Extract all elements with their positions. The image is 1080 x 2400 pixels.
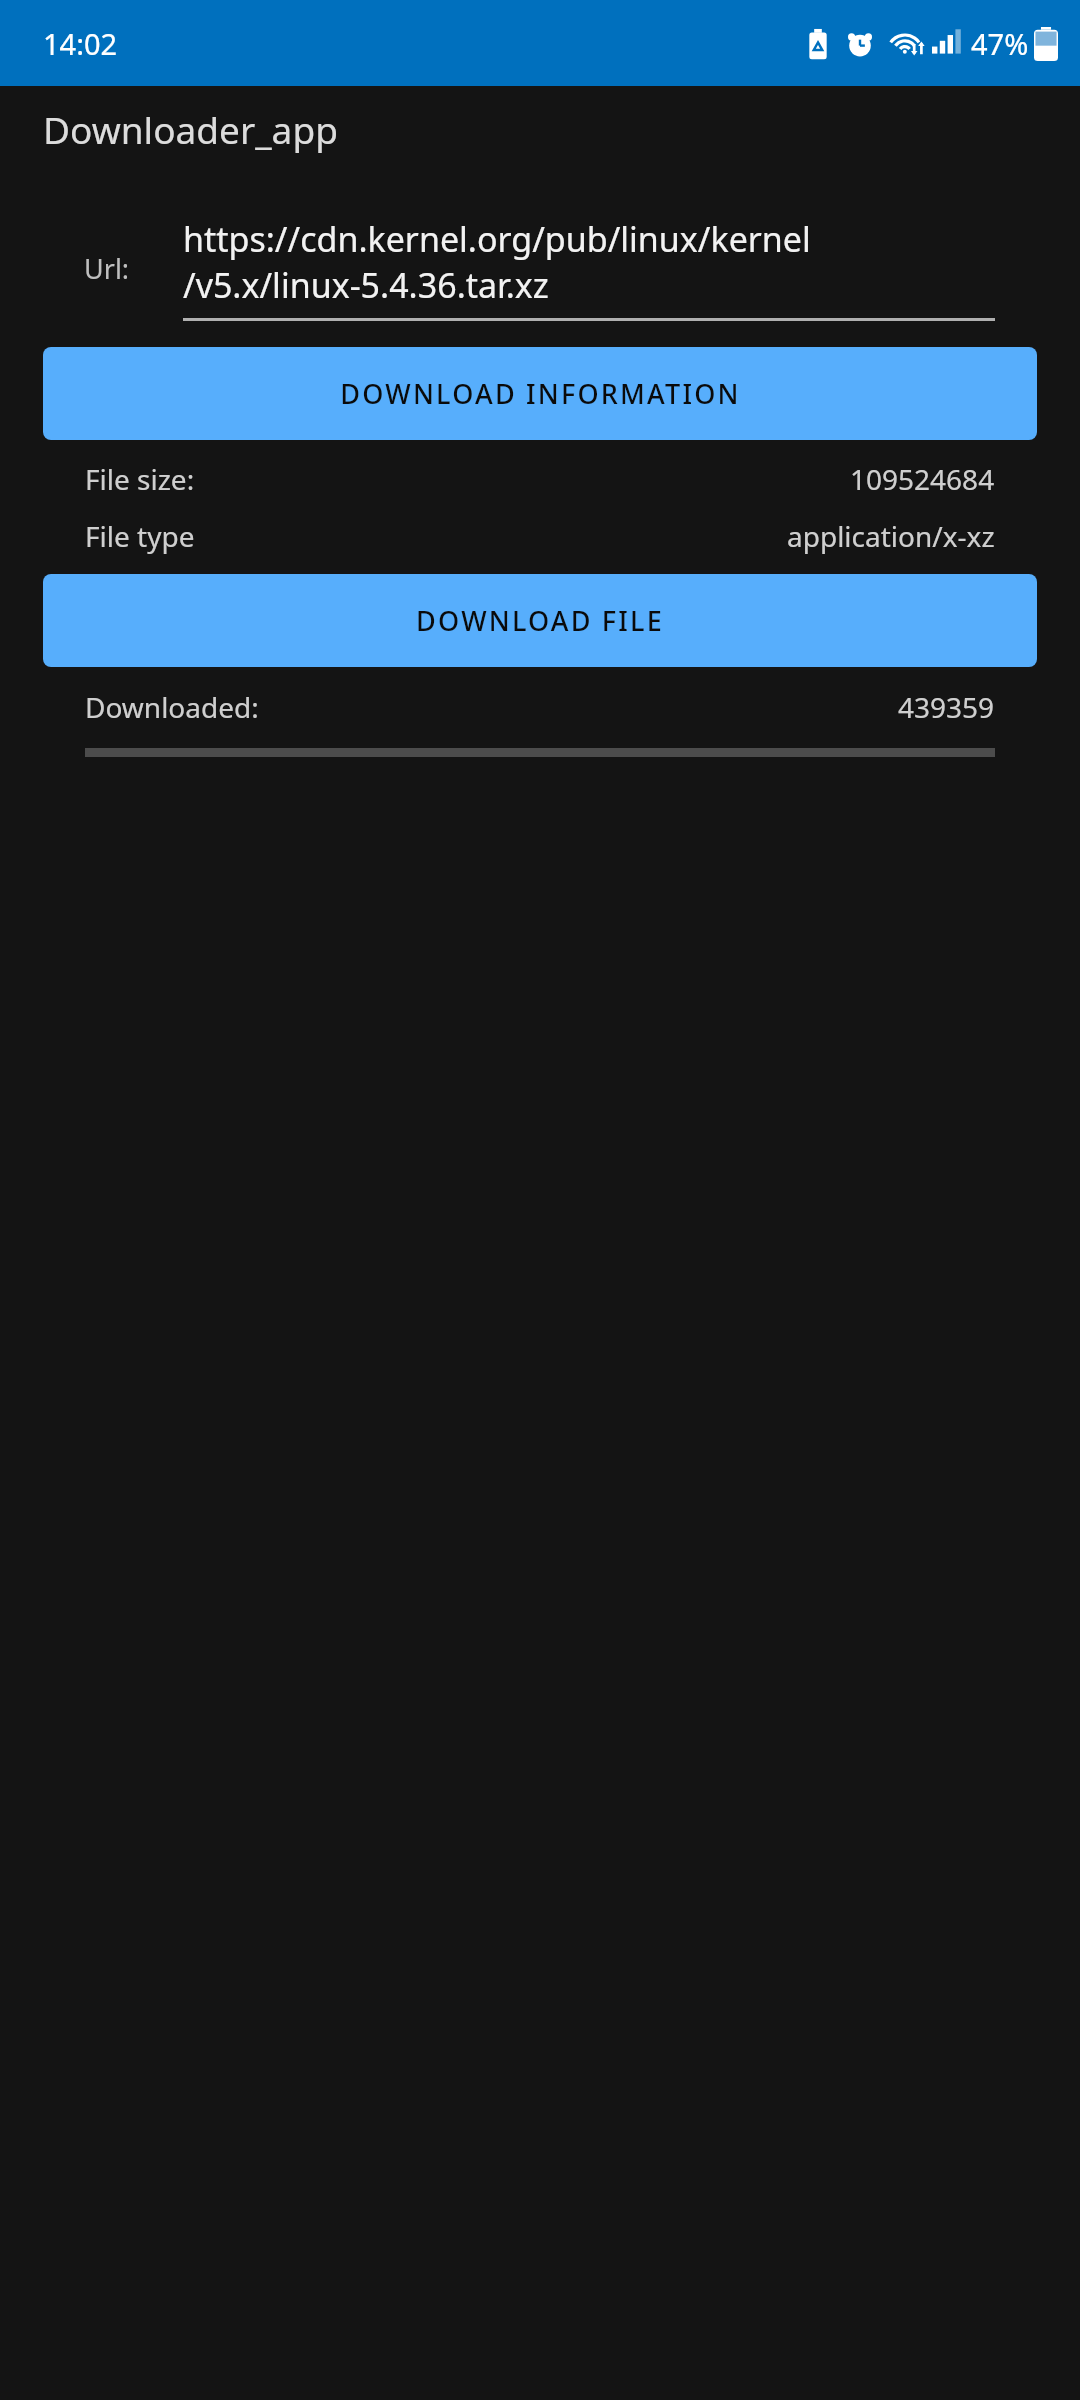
staticText: 47% [971, 24, 1029, 63]
staticText: File type [85, 517, 195, 555]
staticText: Downloader_app [43, 104, 338, 154]
staticText: 14:02 [43, 24, 118, 63]
staticText: application/x-xz [787, 517, 995, 555]
staticText: DOWNLOAD INFORMATION [340, 375, 741, 412]
staticText: 439359 [898, 688, 995, 726]
staticText: 109524684 [850, 460, 995, 498]
button[interactable]: DOWNLOAD INFORMATION [43, 347, 1037, 440]
staticText: Url: [84, 250, 130, 287]
staticText: File size: [85, 460, 195, 498]
staticText: DOWNLOAD FILE [416, 602, 664, 639]
staticText: Downloaded: [85, 688, 259, 726]
staticText: https://cdn.kernel.org/pub/linux/kernel [183, 216, 811, 262]
button[interactable]: DOWNLOAD FILE [43, 574, 1037, 667]
staticText: /v5.x/linux-5.4.36.tar.xz [183, 262, 549, 308]
